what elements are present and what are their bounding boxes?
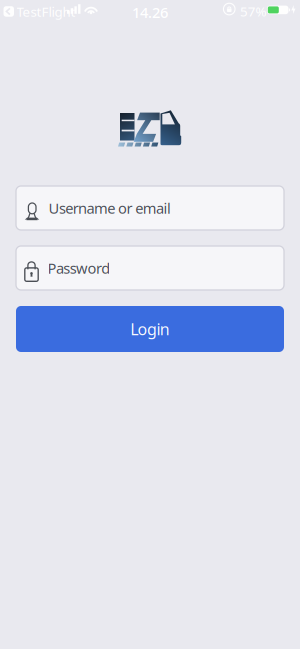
button[interactable]: Back to TestFlight [3, 3, 75, 20]
button[interactable]: Password [16, 246, 284, 290]
staticText: 14.26 [132, 2, 168, 22]
staticText: Username or email [48, 198, 171, 218]
button[interactable]: Username or email [16, 186, 284, 230]
button[interactable]: Login [16, 306, 284, 352]
staticText: 57% [240, 2, 266, 20]
staticText: TestFlight [16, 3, 75, 20]
staticText: Login [130, 318, 170, 340]
staticText: Password [47, 258, 110, 278]
